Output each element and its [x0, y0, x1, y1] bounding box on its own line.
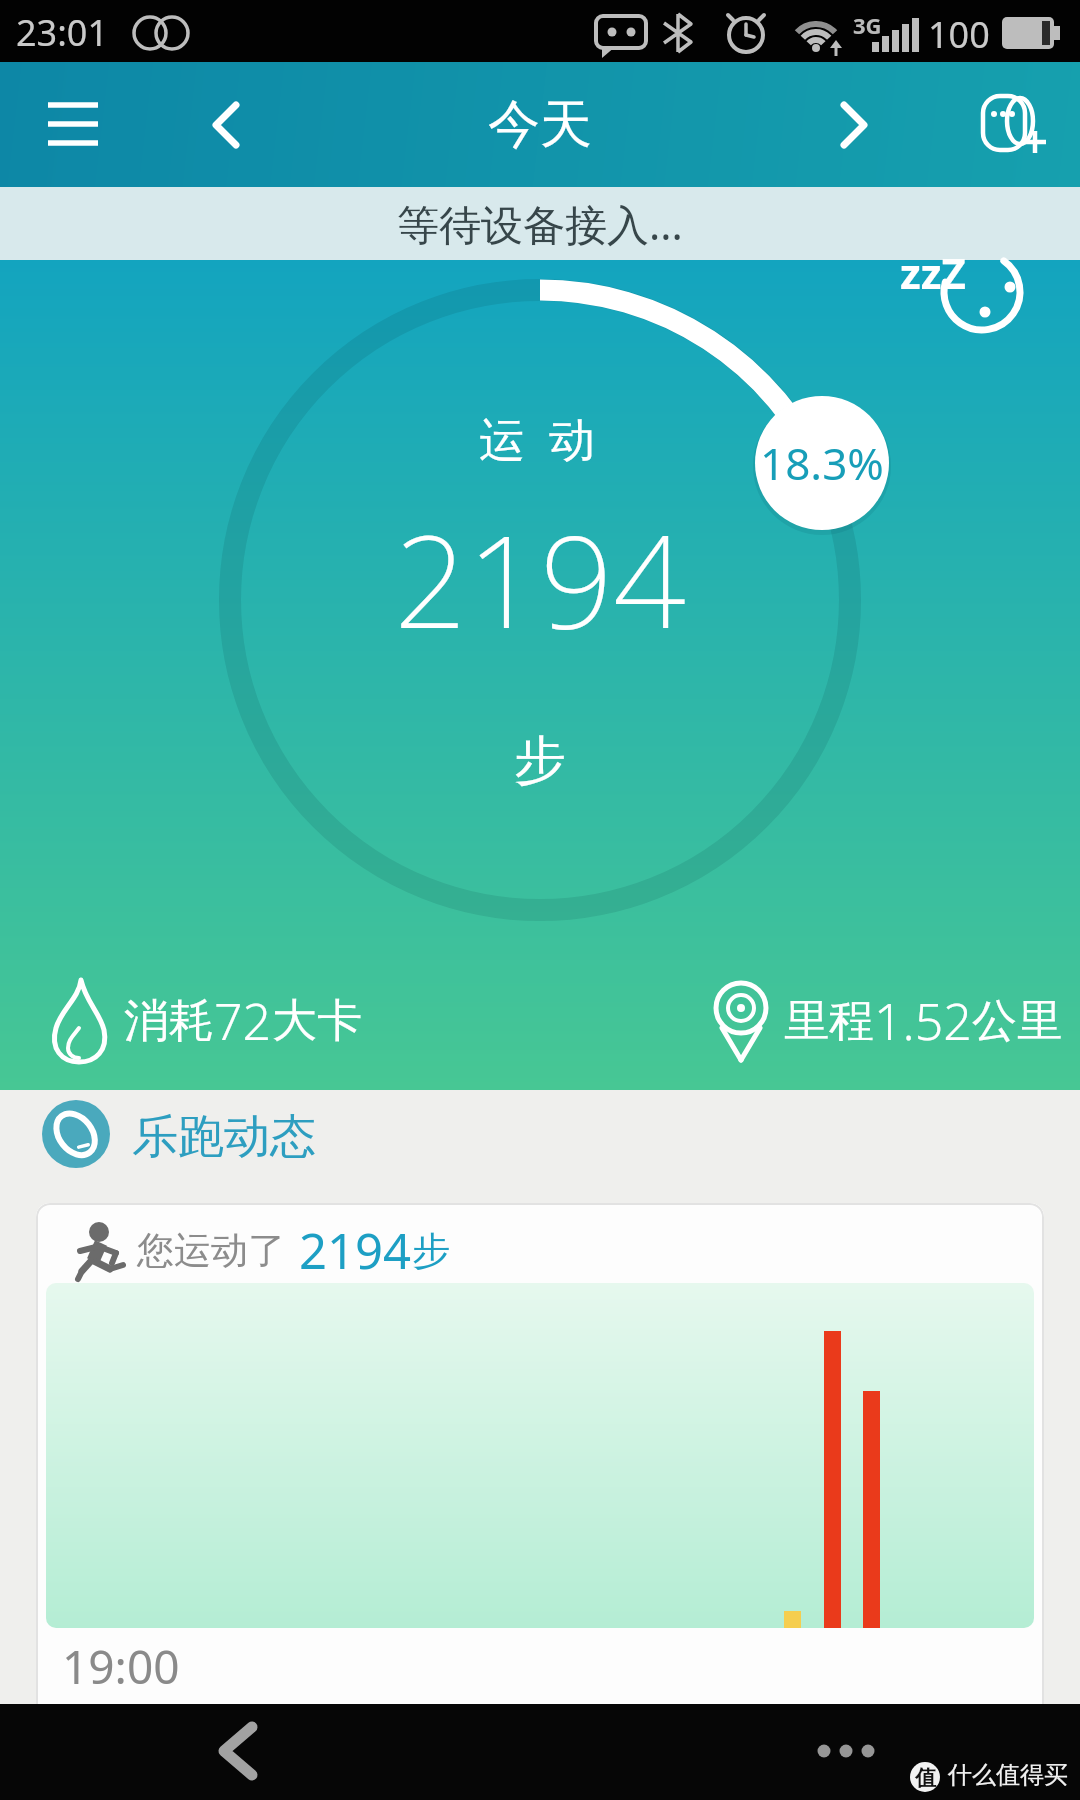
staticText: 步: [412, 1227, 450, 1275]
button[interactable]: 乐跑动态: [42, 1100, 342, 1168]
staticText: 23:01: [16, 8, 109, 57]
staticText: 72: [214, 987, 272, 1055]
button[interactable]: [824, 90, 884, 160]
button[interactable]: 您运动了: [36, 1203, 1044, 1800]
staticText: 2194: [394, 491, 686, 665]
button[interactable]: [790, 1704, 900, 1800]
staticText: 1.52: [874, 987, 972, 1055]
button[interactable]: 消耗: [124, 985, 362, 1057]
button[interactable]: [196, 90, 256, 160]
button[interactable]: 里程: [784, 985, 1062, 1057]
staticText: 19:00: [62, 1635, 180, 1698]
staticText: 值: [915, 1765, 936, 1791]
staticText: 等待设备接入...: [397, 195, 683, 252]
staticText: 步: [514, 728, 566, 794]
button[interactable]: [30, 90, 118, 160]
staticText: 乐跑动态: [132, 1108, 316, 1166]
button[interactable]: 等待设备接入...: [0, 187, 1080, 260]
staticText: zzZ: [900, 244, 966, 301]
staticText: 什么值得买: [948, 1760, 1068, 1790]
staticText: 里程: [784, 993, 874, 1050]
staticText: 100: [928, 10, 990, 59]
staticText: 今天: [488, 92, 592, 158]
staticText: 您运动了: [137, 1227, 285, 1274]
staticText: 大卡: [272, 993, 362, 1050]
staticText: 消耗: [124, 993, 214, 1050]
button[interactable]: [963, 86, 1053, 162]
staticText: 18.3%: [760, 433, 884, 493]
button[interactable]: [160, 1704, 310, 1800]
staticText: 2194: [299, 1217, 412, 1284]
staticText: 公里: [972, 993, 1062, 1050]
staticText: 运 动: [479, 407, 601, 470]
staticText: 3G: [853, 10, 882, 40]
